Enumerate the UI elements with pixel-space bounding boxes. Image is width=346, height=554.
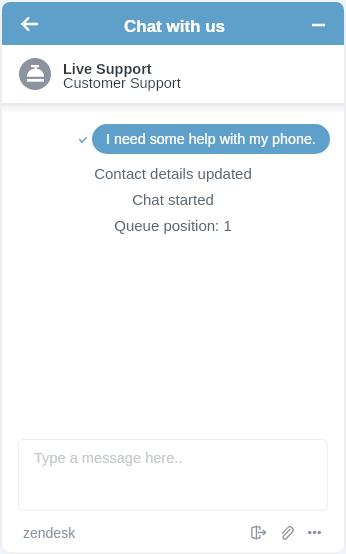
staticText: Customer Support [63,75,181,91]
staticText: Chat with us [124,17,226,36]
button[interactable]: I need some help with my phone. [92,124,330,154]
staticText: I need some help with my phone. [106,131,316,147]
staticText: Live Support [63,61,152,77]
button[interactable]: End chat [246,520,270,544]
button[interactable]: More options [302,520,326,544]
button[interactable]: Back [11,6,47,42]
staticText: Queue position: 1 [2,217,344,243]
staticText: Contact details updated [2,165,344,191]
staticText: Chat started [2,191,344,217]
button[interactable]: Type a message here.. [18,439,328,511]
staticText: Type a message here.. [34,450,183,466]
staticText: zendesk [23,525,76,541]
button[interactable]: Minimize [303,9,333,39]
button[interactable]: Live Support [2,45,344,103]
button[interactable]: Attach file [274,520,298,544]
